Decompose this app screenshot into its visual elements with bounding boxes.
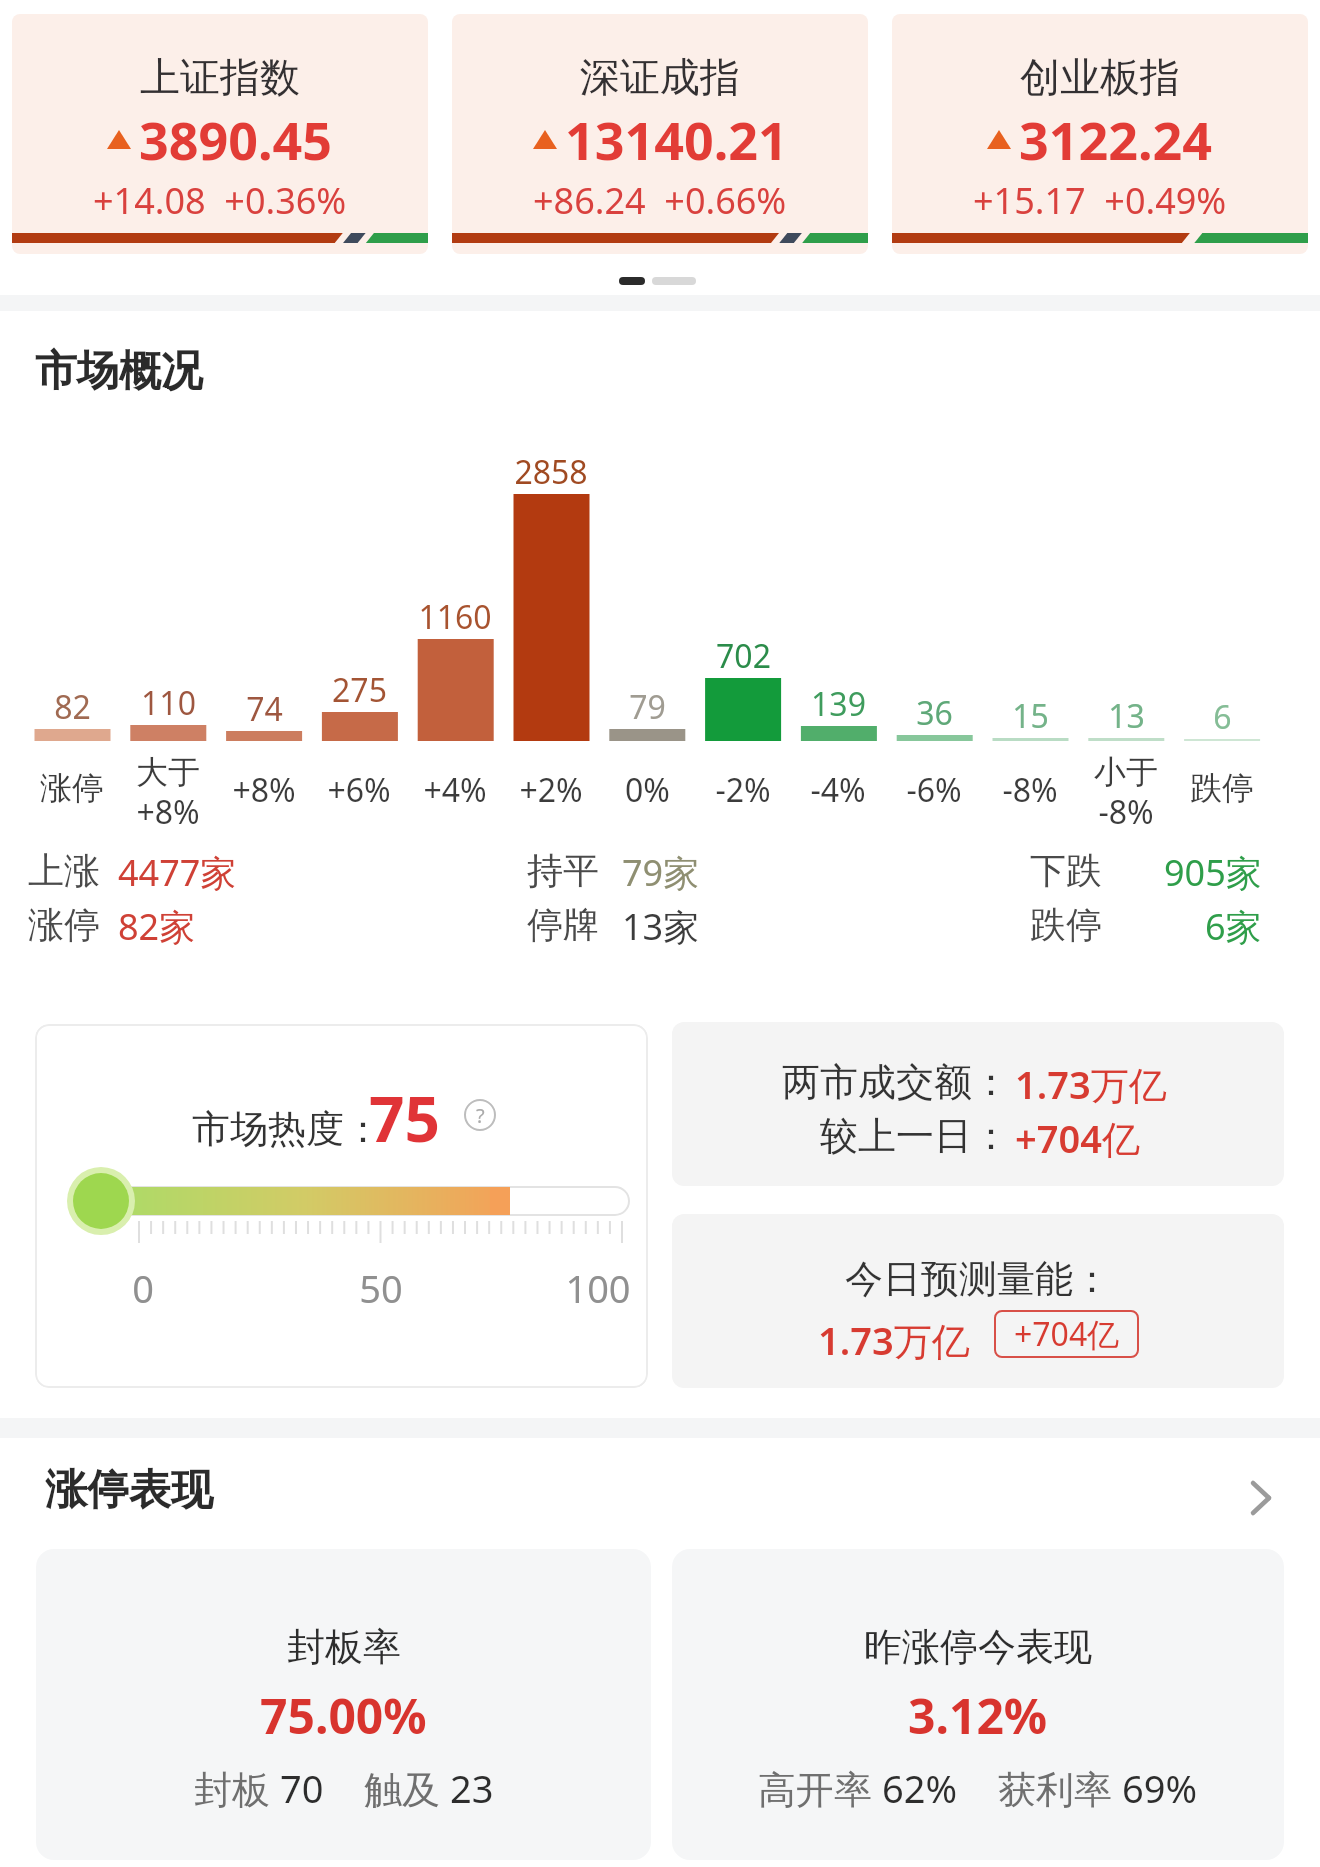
staticText: 市场概况	[35, 345, 203, 398]
staticText: 6	[1213, 695, 1232, 739]
staticText: 大于 +8%	[136, 752, 200, 834]
button[interactable]: 上证指数	[12, 14, 428, 254]
staticText: 0	[132, 1262, 154, 1314]
staticText: 13家	[622, 902, 700, 951]
staticText: 上涨	[28, 848, 100, 893]
staticText: 100	[565, 1262, 631, 1314]
staticText: 小于 -8%	[1094, 752, 1158, 834]
staticText: 持平	[527, 848, 599, 893]
staticText: 触及	[364, 1762, 450, 1814]
staticText: 1160	[418, 595, 492, 639]
staticText: 涨停表现	[45, 1464, 213, 1517]
staticText: 封板	[194, 1762, 280, 1814]
staticText: 1.73万亿	[1015, 1058, 1167, 1110]
button[interactable]: 昨涨停今表现	[672, 1549, 1284, 1860]
staticText: +704亿	[1015, 1112, 1140, 1164]
button[interactable]	[1248, 1478, 1276, 1518]
staticText: 74	[246, 687, 283, 731]
staticText: 上证指数	[140, 52, 300, 102]
staticText: 获利率	[998, 1762, 1122, 1814]
staticText: 0%	[625, 768, 670, 812]
button[interactable]: 市场热度：	[35, 1024, 648, 1388]
staticText: 昨涨停今表现	[864, 1623, 1092, 1671]
staticText: 1.73万亿	[818, 1314, 970, 1366]
staticText: 15	[1012, 694, 1049, 738]
button[interactable]: 创业板指	[892, 14, 1308, 254]
staticText: 702	[716, 634, 771, 678]
staticText: 139	[811, 682, 866, 726]
staticText: 23	[450, 1762, 494, 1814]
staticText: 13140.21	[565, 104, 788, 175]
staticText: +704亿	[1014, 1312, 1120, 1356]
staticText: -8%	[1002, 768, 1058, 812]
staticText: 3890.45	[139, 104, 333, 175]
staticText: +14.08 +0.36%	[93, 176, 347, 225]
staticText: 4477家	[118, 848, 237, 897]
staticText: 62%	[882, 1762, 958, 1814]
staticText: +8%	[232, 768, 296, 812]
staticText: +15.17 +0.49%	[973, 176, 1227, 225]
staticText: 跌停	[1190, 768, 1254, 808]
staticText: 275	[332, 668, 387, 712]
staticText: -2%	[715, 768, 771, 812]
staticText: 79	[629, 685, 666, 729]
staticText: -4%	[810, 768, 866, 812]
staticText: 下跌	[1030, 848, 1102, 893]
staticText: ?	[476, 1102, 485, 1129]
staticText: +6%	[327, 768, 391, 812]
staticText: 69%	[1122, 1762, 1198, 1814]
staticText: 创业板指	[1020, 52, 1180, 102]
staticText: 停牌	[527, 902, 599, 947]
staticText: 封板率	[287, 1623, 401, 1671]
staticText: 6家	[1205, 902, 1262, 951]
staticText: 75.00%	[260, 1683, 427, 1748]
staticText: 今日预测量能：	[845, 1255, 1111, 1303]
staticText: 79家	[622, 848, 700, 897]
staticText: 跌停	[1030, 902, 1102, 947]
staticText: 110	[141, 681, 196, 725]
button[interactable]: 封板率	[36, 1549, 651, 1860]
staticText: 82	[54, 685, 91, 729]
staticText: 高开率	[758, 1762, 882, 1814]
staticText: -6%	[906, 768, 962, 812]
staticText: 82家	[118, 902, 196, 951]
staticText: 两市成交额：	[782, 1058, 1010, 1106]
staticText: 2858	[514, 450, 588, 494]
staticText: 涨停	[40, 768, 104, 808]
staticText: 70	[280, 1762, 324, 1814]
staticText: 3122.24	[1019, 104, 1213, 175]
button[interactable]: 两市成交额：	[672, 1022, 1284, 1186]
staticText: 较上一日：	[820, 1112, 1010, 1160]
staticText: +86.24 +0.66%	[533, 176, 787, 225]
staticText: 50	[359, 1262, 403, 1314]
staticText: 市场热度：	[192, 1105, 382, 1153]
staticText: 36	[916, 691, 953, 735]
staticText: 深证成指	[580, 52, 740, 102]
staticText: 3.12%	[908, 1683, 1048, 1748]
staticText: +4%	[423, 768, 487, 812]
staticText: 涨停	[28, 902, 100, 947]
staticText: +2%	[519, 768, 583, 812]
staticText: 13	[1108, 694, 1145, 738]
button[interactable]: 深证成指	[452, 14, 868, 254]
button[interactable]: 今日预测量能：	[672, 1214, 1284, 1388]
staticText: 75	[369, 1076, 440, 1160]
staticText: 905家	[1164, 848, 1262, 897]
